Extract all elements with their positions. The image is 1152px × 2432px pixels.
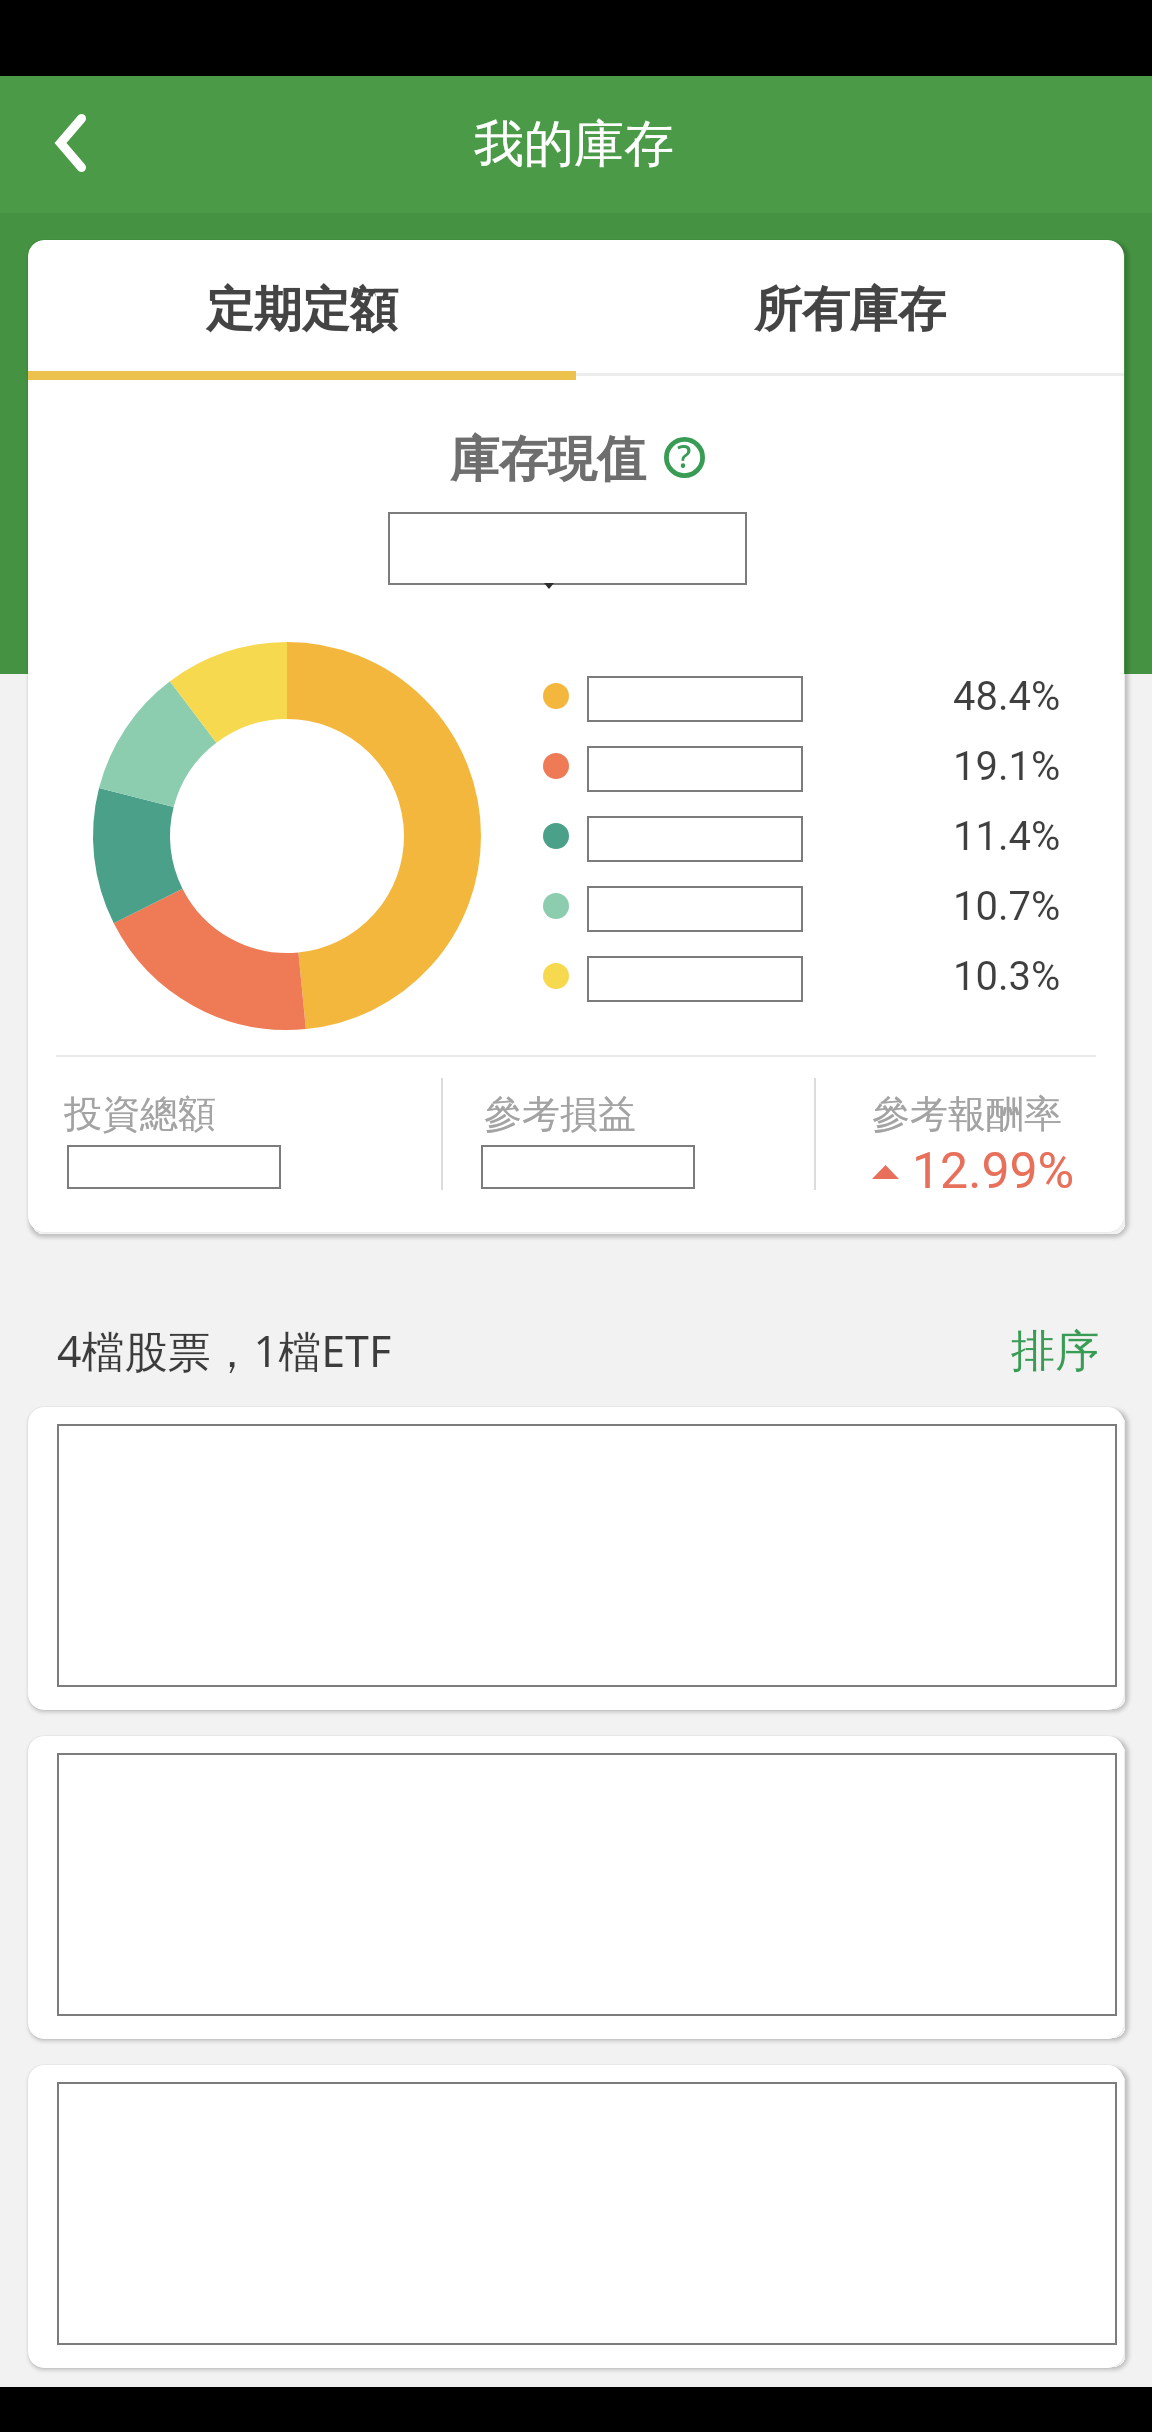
staticText: 我的庫存 <box>474 113 674 176</box>
button[interactable] <box>28 1407 1124 1710</box>
staticText: 參考報酬率 <box>872 1090 1062 1138</box>
staticText: ? <box>677 434 692 478</box>
staticText: 庫存現值 <box>450 429 646 491</box>
staticText: 所有庫存 <box>754 280 946 340</box>
button[interactable]: Help <box>660 433 708 481</box>
staticText: 48.4% <box>953 673 1061 720</box>
button[interactable]: 定期定額 <box>28 240 576 380</box>
staticText: 定期定額 <box>206 280 398 340</box>
staticText: 排序 <box>1011 1324 1099 1379</box>
button[interactable] <box>28 2065 1124 2368</box>
button[interactable]: 所有庫存 <box>576 240 1124 380</box>
staticText: 4檔股票，1檔ETF <box>57 1321 392 1380</box>
staticText: 11.4% <box>953 813 1061 860</box>
staticText: 10.7% <box>953 883 1061 930</box>
button[interactable] <box>28 1736 1124 2039</box>
staticText: 12.99% <box>912 1142 1075 1201</box>
button[interactable]: 排序 <box>990 1315 1119 1387</box>
staticText: 投資總額 <box>64 1090 216 1138</box>
button[interactable]: Back <box>34 105 110 181</box>
staticText: 19.1% <box>953 743 1061 790</box>
staticText: 10.3% <box>953 953 1061 1000</box>
staticText: 參考損益 <box>484 1090 636 1138</box>
